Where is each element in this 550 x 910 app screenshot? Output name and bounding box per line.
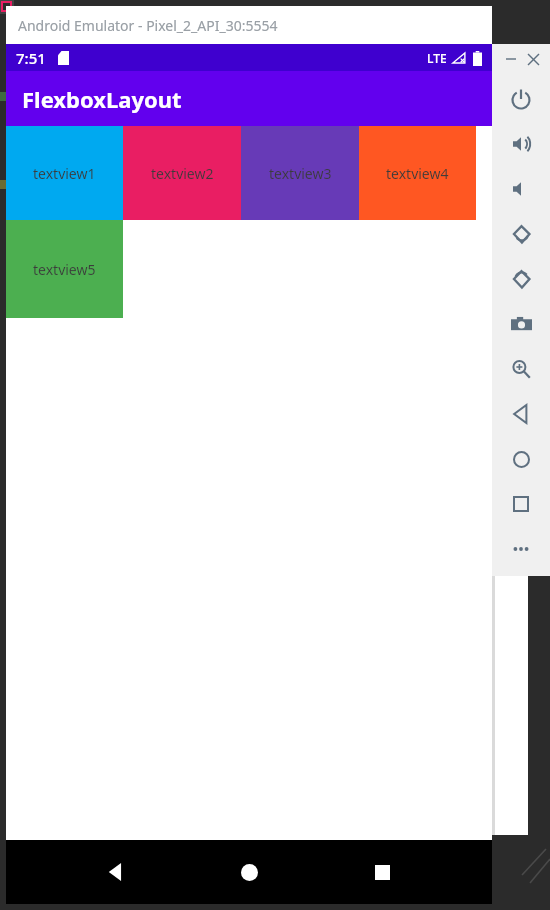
button[interactable]: Close <box>522 48 544 70</box>
button[interactable]: More <box>504 532 538 566</box>
button[interactable]: textview3 <box>241 126 359 220</box>
staticText: textview4 <box>386 164 449 183</box>
button[interactable]: Take screenshot <box>504 307 538 341</box>
button[interactable]: Back <box>92 848 140 896</box>
button[interactable]: textview1 <box>6 126 123 220</box>
button[interactable]: Rotate right <box>504 262 538 296</box>
button[interactable]: Rotate left <box>504 217 538 251</box>
button[interactable]: Volume down <box>504 172 538 206</box>
button[interactable]: Zoom <box>504 352 538 386</box>
staticText: textview5 <box>33 260 96 279</box>
button[interactable]: Minimize <box>500 48 522 70</box>
staticText: textview2 <box>151 164 214 183</box>
staticText: textview3 <box>269 164 332 183</box>
button[interactable]: Home <box>504 442 538 476</box>
button[interactable]: textview2 <box>123 126 241 220</box>
staticText: 7:51 <box>16 48 46 68</box>
staticText: FlexboxLayout <box>22 84 182 114</box>
staticText: Android Emulator - Pixel_2_API_30:5554 <box>18 16 278 35</box>
button[interactable]: Volume up <box>504 127 538 161</box>
staticText: textview1 <box>33 164 96 183</box>
button[interactable]: Recent apps <box>358 848 406 896</box>
button[interactable]: Back <box>504 397 538 431</box>
staticText: LTE <box>427 50 447 66</box>
button[interactable]: Overview <box>504 487 538 521</box>
button[interactable]: Power <box>504 82 538 116</box>
button[interactable]: textview5 <box>6 220 123 318</box>
button[interactable]: Home <box>225 848 273 896</box>
button[interactable]: textview4 <box>359 126 476 220</box>
